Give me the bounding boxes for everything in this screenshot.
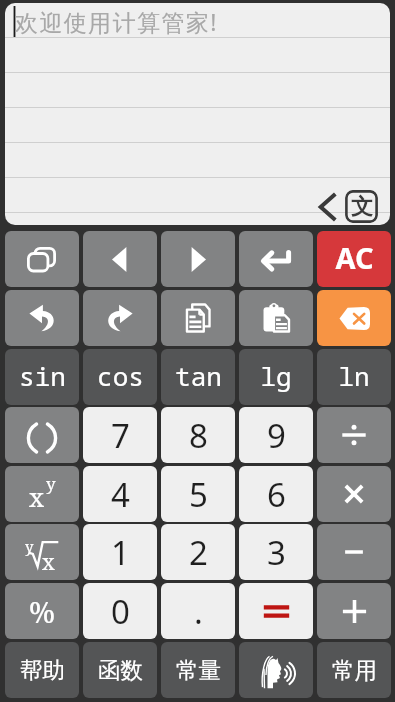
staticText: 常量 (176, 656, 221, 684)
staticText: 欢迎使用计算管家! (15, 6, 218, 37)
staticText: 8 (189, 413, 208, 458)
button[interactable]: 0 (83, 583, 157, 639)
staticText: 1 (111, 530, 130, 575)
button[interactable]: 8 (161, 407, 235, 463)
staticText: x (42, 546, 55, 576)
button[interactable]: Equals (239, 583, 313, 639)
button[interactable]: % (5, 583, 79, 639)
staticText: 2 (189, 530, 208, 575)
button[interactable]: 3 (239, 524, 313, 580)
staticText: y (46, 472, 56, 495)
button[interactable]: Parentheses (5, 407, 79, 463)
button[interactable]: sin (5, 349, 79, 405)
button[interactable]: Enter (239, 231, 313, 287)
button[interactable]: Minus (317, 524, 391, 580)
button[interactable]: Move cursor left (83, 231, 157, 287)
staticText: 函数 (98, 656, 143, 684)
button[interactable]: 常量 (161, 642, 235, 698)
button[interactable]: tan (161, 349, 235, 405)
staticText: 帮助 (20, 656, 65, 684)
staticText: 常用 (332, 656, 377, 684)
button[interactable]: Multiply (317, 466, 391, 522)
button[interactable]: Switch window (5, 231, 79, 287)
staticText: % (29, 592, 55, 631)
button[interactable]: x to the power of y (5, 466, 79, 522)
staticText: lg (260, 358, 292, 393)
button[interactable]: Move cursor right (161, 231, 235, 287)
button[interactable]: 4 (83, 466, 157, 522)
staticText: AC (335, 238, 374, 277)
button[interactable]: AC (317, 231, 391, 287)
button[interactable]: y-th root of x (5, 524, 79, 580)
staticText: y (25, 536, 34, 556)
staticText: ln (338, 358, 370, 393)
button[interactable]: 常用 (317, 642, 391, 698)
button[interactable]: Copy (161, 290, 235, 346)
button[interactable]: 2 (161, 524, 235, 580)
staticText: tan (175, 358, 222, 393)
staticText: x (29, 479, 45, 511)
staticText: 5 (189, 472, 208, 517)
button[interactable]: 6 (239, 466, 313, 522)
button[interactable]: Read aloud (239, 642, 313, 698)
staticText: cos (97, 358, 144, 393)
button[interactable]: cos (83, 349, 157, 405)
button[interactable]: 5 (161, 466, 235, 522)
button[interactable]: Backspace (317, 290, 391, 346)
staticText: 9 (267, 413, 286, 458)
button[interactable]: . (161, 583, 235, 639)
button[interactable]: 1 (83, 524, 157, 580)
button[interactable]: Back (311, 191, 343, 223)
button[interactable]: ln (317, 349, 391, 405)
button[interactable]: 函数 (83, 642, 157, 698)
button[interactable]: Switch input method (345, 190, 378, 223)
button[interactable]: Paste (239, 290, 313, 346)
staticText: 4 (111, 472, 130, 517)
staticText: 6 (267, 472, 286, 517)
staticText: 7 (111, 413, 130, 458)
button[interactable]: Redo (83, 290, 157, 346)
button[interactable]: Plus (317, 583, 391, 639)
staticText: sin (19, 358, 66, 393)
button[interactable]: 7 (83, 407, 157, 463)
staticText: 0 (111, 589, 130, 634)
button[interactable]: Divide (317, 407, 391, 463)
button[interactable]: 帮助 (5, 642, 79, 698)
button[interactable]: lg (239, 349, 313, 405)
button[interactable]: 9 (239, 407, 313, 463)
staticText: 文 (351, 193, 373, 221)
staticText: . (194, 589, 203, 634)
staticText: 3 (267, 530, 286, 575)
button[interactable]: Undo (5, 290, 79, 346)
